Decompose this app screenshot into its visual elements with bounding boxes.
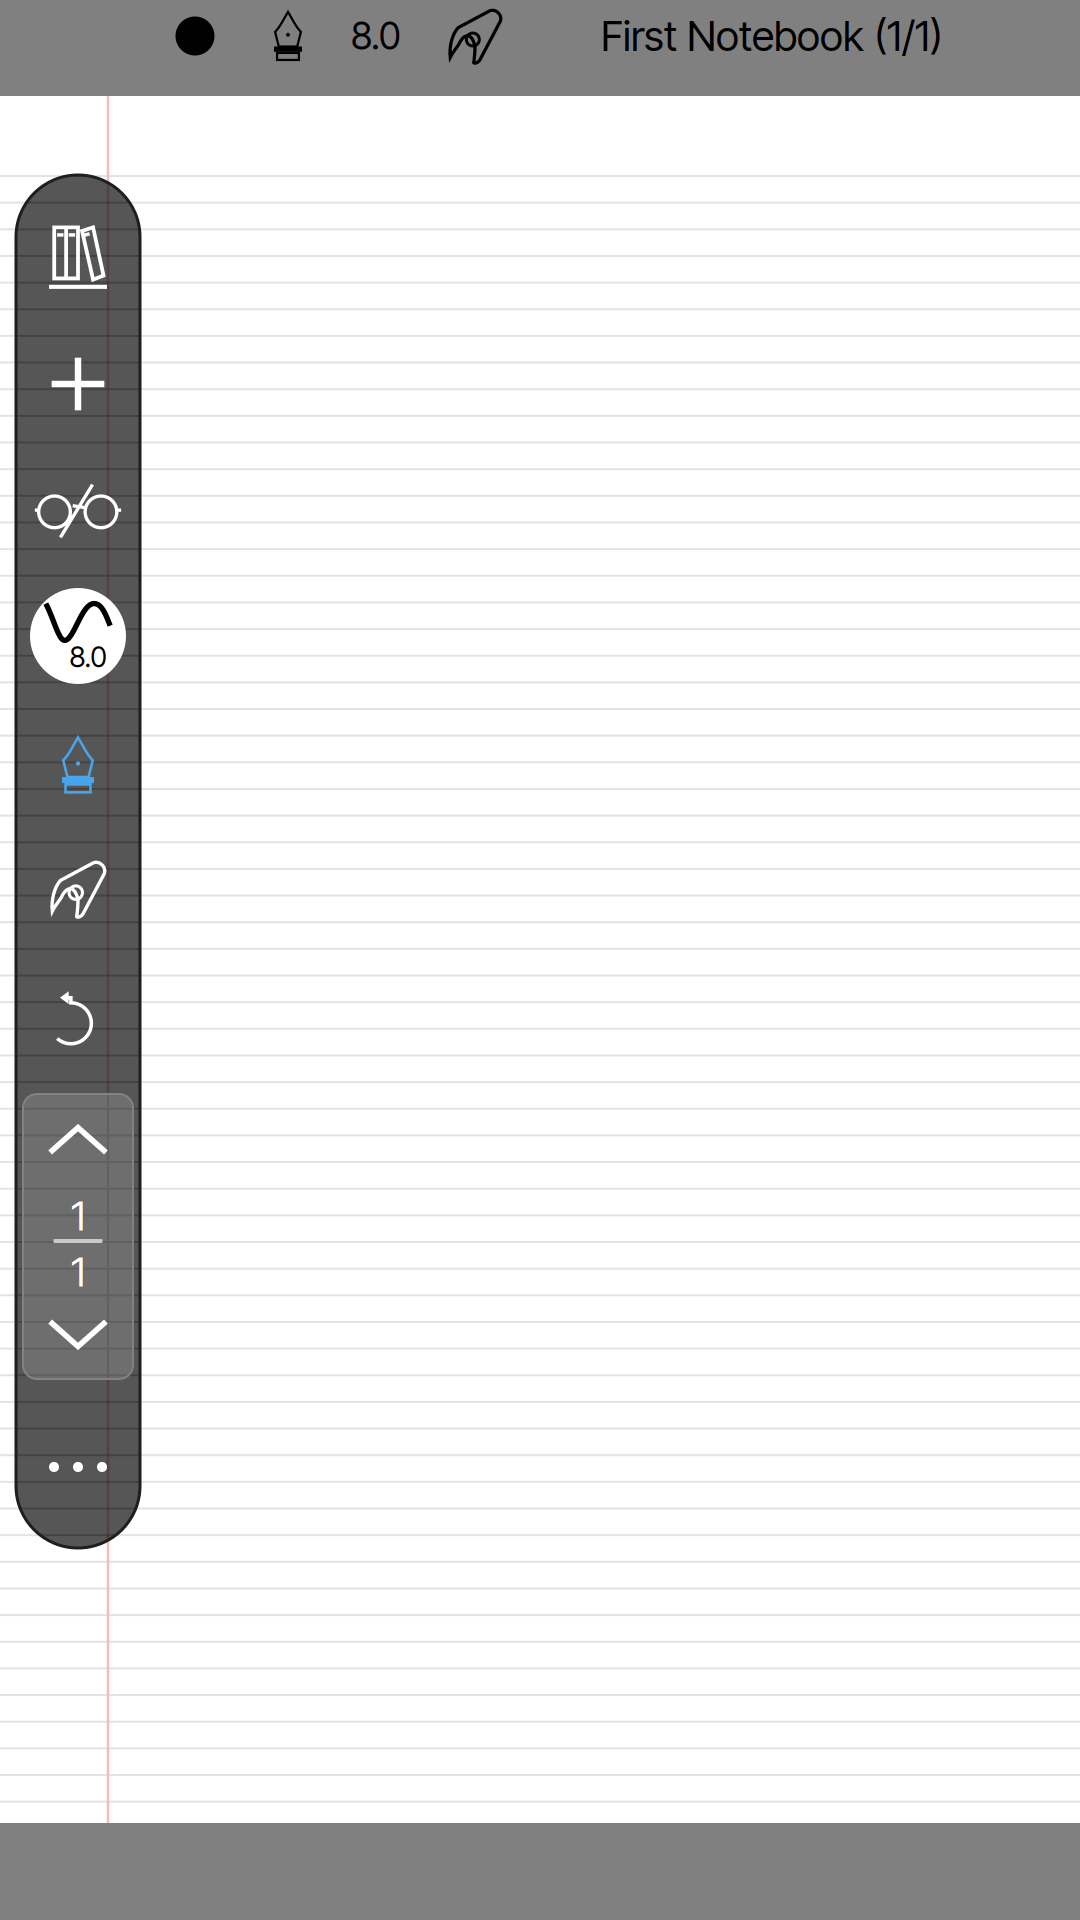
button[interactable]: Previous page — [23, 1094, 133, 1186]
button[interactable]: Ink colour — [155, 0, 235, 72]
button[interactable]: Cut — [16, 463, 140, 559]
button[interactable]: Pen — [16, 717, 140, 813]
staticText: 1 — [71, 1248, 85, 1296]
button[interactable]: Handwriting — [16, 841, 140, 937]
button[interactable]: Undo — [16, 970, 140, 1066]
button[interactable]: Pen tool — [248, 0, 328, 72]
button[interactable]: New page — [16, 336, 140, 432]
staticText: First Notebook (1/1) — [601, 11, 943, 61]
button[interactable]: 8.0 — [331, 0, 421, 72]
button[interactable]: More options — [16, 1435, 140, 1499]
staticText: 8.0 — [69, 640, 106, 674]
button[interactable]: Library — [16, 211, 140, 307]
button[interactable]: Next page — [23, 1288, 133, 1380]
button[interactable]: Stroke width 8.0 — [16, 584, 140, 688]
button[interactable]: Handwriting mode — [435, 0, 515, 72]
staticText: 8.0 — [351, 13, 401, 59]
staticText: 1 — [71, 1192, 85, 1240]
